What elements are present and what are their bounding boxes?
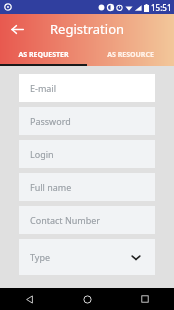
button[interactable]: Type (19, 239, 155, 275)
button[interactable]: E-mail (19, 74, 155, 102)
button[interactable]: AS RESOURCE (87, 44, 174, 66)
staticText: 15:51 (151, 2, 172, 13)
button[interactable]: Back (6, 18, 28, 40)
button[interactable]: Full name (19, 173, 155, 201)
staticText: Contact Number (30, 214, 101, 226)
staticText: AS RESOURCE (107, 50, 154, 60)
staticText: Type (30, 251, 51, 263)
staticText: Registration (50, 20, 125, 38)
staticText: Password (30, 115, 71, 127)
staticText: Full name (30, 181, 72, 193)
button[interactable]: AS REQUESTER (0, 44, 87, 66)
button[interactable]: Login (19, 140, 155, 168)
button[interactable]: Contact Number (19, 206, 155, 234)
staticText: E-mail (30, 82, 57, 94)
button[interactable]: Password (19, 107, 155, 135)
button[interactable]: Recent apps (116, 288, 174, 310)
button[interactable]: Back (0, 288, 58, 310)
staticText: Login (30, 148, 54, 160)
button[interactable]: Home (58, 288, 116, 310)
staticText: AS REQUESTER (18, 50, 69, 60)
